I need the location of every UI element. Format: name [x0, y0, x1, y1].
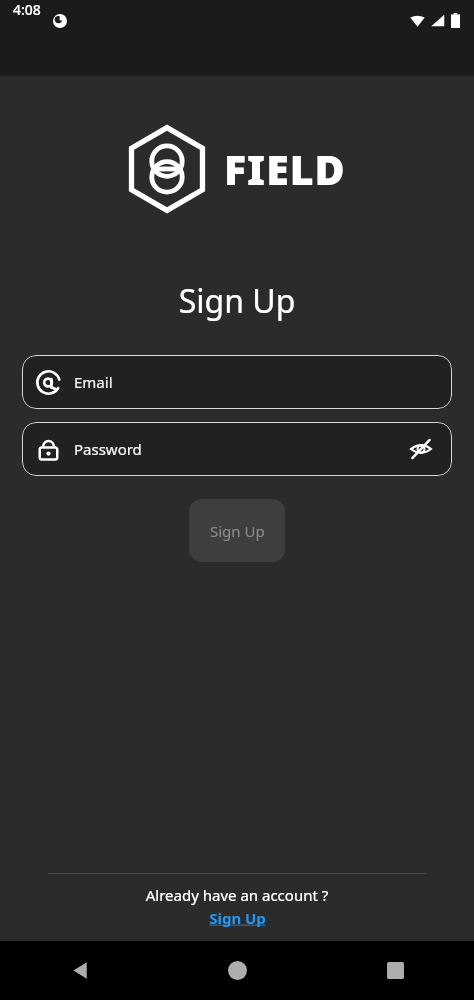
button[interactable]: Home	[158, 941, 316, 1000]
staticText: Password	[74, 439, 142, 459]
staticText: 4:08	[13, 0, 41, 19]
button[interactable]: Sign Up	[203, 907, 272, 929]
staticText: Sign Up	[0, 279, 474, 323]
button[interactable]: Email	[22, 355, 452, 409]
button[interactable]: Back	[0, 941, 158, 1000]
button[interactable]: Recent apps	[316, 941, 474, 1000]
staticText: Email	[74, 372, 113, 392]
staticText: Sign Up	[210, 521, 265, 541]
button[interactable]: Show password	[404, 432, 438, 466]
staticText: Sign Up	[209, 908, 266, 928]
button[interactable]: Sign Up	[189, 499, 285, 562]
button[interactable]: Password	[22, 422, 452, 476]
staticText: FIELD	[224, 141, 346, 197]
staticText: Already have an account ?	[0, 885, 474, 905]
